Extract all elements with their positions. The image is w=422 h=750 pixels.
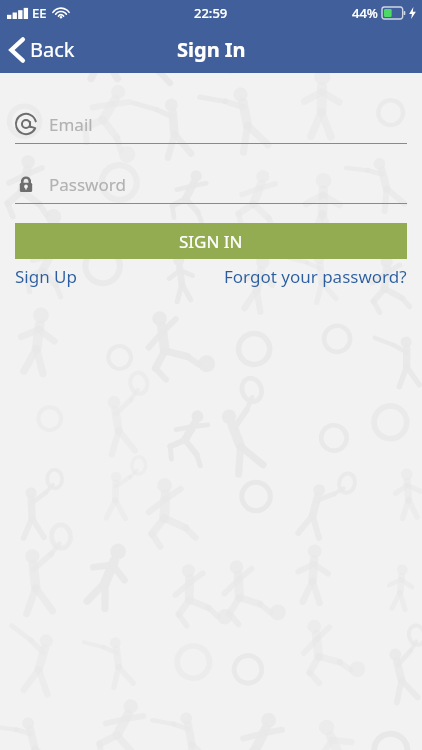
staticText: Back (30, 36, 75, 63)
staticText: Sign In (177, 36, 246, 63)
staticText: SIGN IN (179, 230, 243, 253)
button[interactable]: Forgot your password? (224, 265, 407, 288)
staticText: 44% (352, 4, 378, 22)
button[interactable]: Sign Up (15, 265, 77, 288)
staticText: Forgot your password? (224, 265, 407, 288)
staticText: EE (32, 4, 47, 22)
button[interactable]: Password (15, 165, 407, 203)
button[interactable]: Email (15, 105, 407, 143)
button[interactable]: Back (0, 26, 87, 73)
staticText: Password (49, 173, 126, 196)
staticText: 22:59 (194, 4, 228, 22)
staticText: Sign Up (15, 265, 77, 288)
button[interactable]: SIGN IN (15, 223, 407, 259)
staticText: Email (49, 113, 93, 136)
